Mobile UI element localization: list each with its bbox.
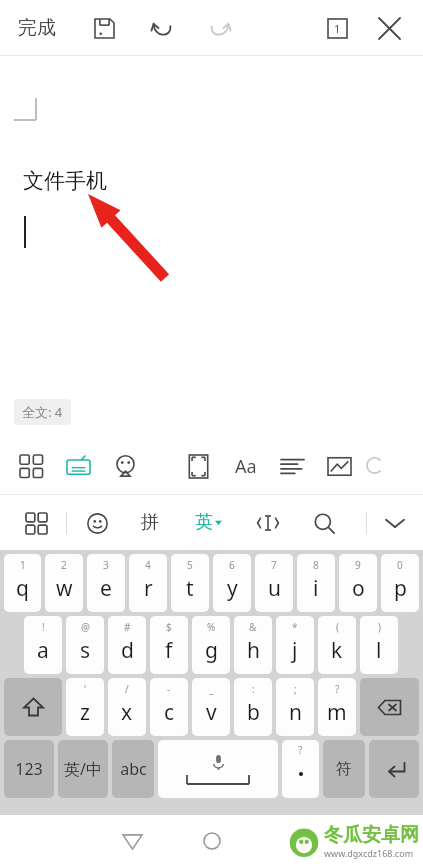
button[interactable]: & [234, 616, 272, 674]
staticText: 全文: 4 [22, 403, 63, 421]
staticText: 文件手机 [23, 168, 107, 194]
staticText: ? [298, 743, 303, 757]
staticText: g [205, 636, 218, 665]
button[interactable]: 符 [323, 740, 365, 798]
staticText: m [327, 698, 347, 727]
button[interactable]: Image [316, 439, 363, 494]
staticText: ( [336, 620, 339, 634]
staticText: x [121, 698, 133, 727]
button[interactable]: @ [66, 616, 104, 674]
button[interactable]: Emoji [102, 439, 149, 494]
button[interactable]: 5 [171, 554, 209, 612]
button[interactable]: : [234, 678, 272, 736]
button[interactable]: Pages [317, 8, 357, 48]
button[interactable]: 英/中 [58, 740, 108, 798]
button[interactable]: 2 [45, 554, 83, 612]
staticText: i [313, 574, 319, 603]
button[interactable]: Select [175, 439, 222, 494]
button[interactable]: 6 [213, 554, 251, 612]
staticText: / [125, 682, 129, 696]
button[interactable]: ( [318, 616, 356, 674]
button[interactable]: Font [222, 439, 269, 494]
button[interactable]: ? [318, 678, 356, 736]
button[interactable]: 0 [381, 554, 419, 612]
button[interactable]: Enter [369, 740, 419, 798]
staticText: 7 [271, 558, 277, 572]
button[interactable]: - [150, 678, 188, 736]
button[interactable]: / [108, 678, 146, 736]
button[interactable]: 3 [87, 554, 125, 612]
staticText: % [207, 620, 216, 634]
button[interactable]: ) [360, 616, 398, 674]
button[interactable]: 拼 [133, 503, 167, 542]
button[interactable]: Period [282, 740, 319, 798]
staticText: www.dgxcdz168.com [324, 847, 414, 859]
staticText: p [394, 574, 407, 603]
staticText: - [167, 682, 171, 696]
button[interactable]: abc [112, 740, 154, 798]
button[interactable]: Close [369, 8, 409, 48]
staticText: 0 [397, 558, 403, 572]
staticText: z [80, 698, 90, 727]
button[interactable]: % [192, 616, 230, 674]
staticText: c [164, 698, 175, 727]
staticText: q [16, 574, 29, 603]
button[interactable]: Hide keyboard [367, 495, 423, 550]
button[interactable]: Home [190, 819, 234, 863]
button[interactable]: Undo [142, 8, 182, 48]
staticText: w [56, 574, 73, 603]
button[interactable]: 全文: 4 [14, 399, 71, 425]
staticText: 3 [103, 558, 109, 572]
button[interactable]: Emoji [75, 501, 119, 545]
button[interactable]: ! [24, 616, 62, 674]
button[interactable]: Redo [200, 8, 240, 48]
button[interactable]: Keyboard [55, 439, 102, 494]
button[interactable]: ; [276, 678, 314, 736]
staticText: 1 [20, 558, 26, 572]
staticText: k [331, 636, 343, 665]
button[interactable]: 123 [4, 740, 54, 798]
button[interactable]: Save [84, 8, 124, 48]
staticText: 拼 [141, 511, 159, 534]
staticText: 123 [15, 758, 43, 780]
button[interactable]: * [276, 616, 314, 674]
staticText: s [80, 636, 91, 665]
button[interactable]: 完成 [16, 10, 58, 46]
button[interactable]: Search [302, 501, 346, 545]
staticText: v [206, 698, 217, 727]
button[interactable]: Shift [4, 678, 62, 736]
staticText: # [124, 620, 131, 634]
button[interactable]: 4 [129, 554, 167, 612]
staticText: ! [42, 620, 45, 634]
button[interactable]: $ [150, 616, 188, 674]
button[interactable]: 7 [255, 554, 293, 612]
staticText: ' [84, 682, 87, 696]
button[interactable]: 9 [339, 554, 377, 612]
button[interactable]: 文件手机 [0, 56, 423, 439]
staticText: b [247, 698, 260, 727]
staticText: _ [209, 682, 214, 696]
button[interactable]: Voice [363, 439, 389, 494]
button[interactable]: # [108, 616, 146, 674]
button[interactable]: _ [192, 678, 230, 736]
staticText: ; [294, 682, 297, 696]
button[interactable]: 8 [297, 554, 335, 612]
button[interactable]: Back [110, 819, 154, 863]
button[interactable]: Align [269, 439, 316, 494]
button[interactable]: Apps [8, 439, 55, 494]
staticText: d [121, 636, 134, 665]
staticText: ) [378, 620, 381, 634]
button[interactable]: Space [158, 740, 278, 798]
staticText: t [186, 574, 194, 603]
staticText: u [268, 574, 281, 603]
button[interactable]: Keyboard menu [14, 501, 58, 545]
button[interactable]: 1 [4, 554, 41, 612]
button[interactable]: Backspace [360, 678, 419, 736]
staticText: ? [335, 682, 340, 696]
button[interactable]: 英 [189, 503, 228, 542]
staticText: 完成 [18, 16, 56, 40]
button[interactable]: Move cursor [246, 501, 290, 545]
button[interactable]: ' [66, 678, 104, 736]
staticText: @ [81, 620, 90, 634]
staticText: $ [166, 620, 172, 634]
